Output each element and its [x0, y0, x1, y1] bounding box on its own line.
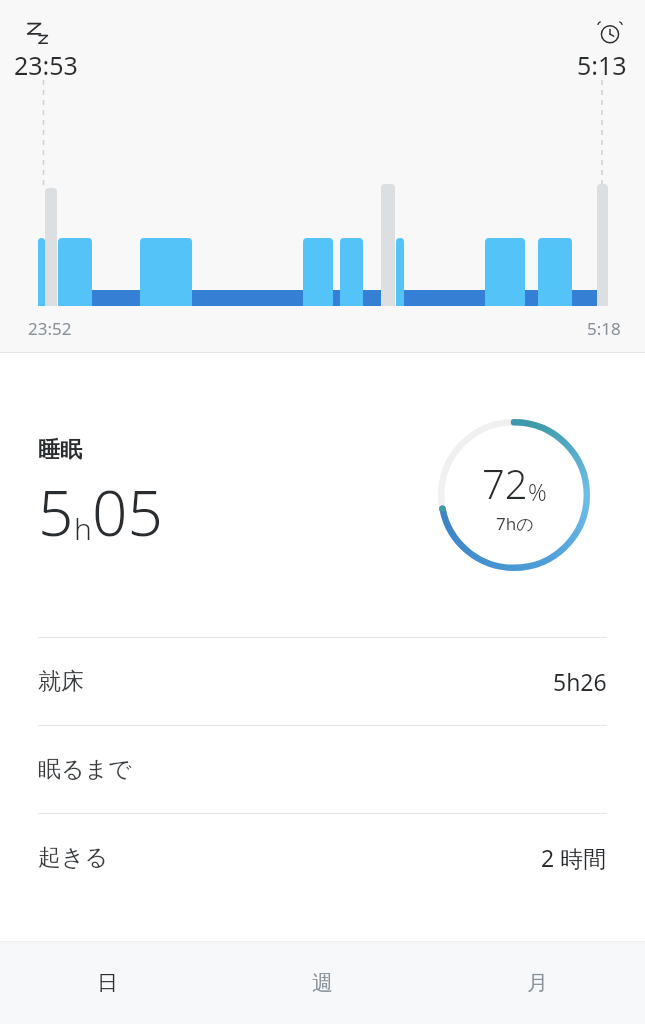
staticText: 眠るまで: [38, 755, 132, 784]
button[interactable]: 眠るまで: [0, 726, 645, 813]
staticText: 5:13: [577, 48, 627, 82]
staticText: 日: [97, 970, 118, 996]
other: Alarm: [597, 18, 623, 46]
button[interactable]: 起きる: [0, 814, 645, 901]
staticText: 2 時間: [541, 842, 607, 873]
staticText: 月: [527, 970, 548, 996]
staticText: 5:18: [587, 317, 621, 340]
staticText: 週: [312, 970, 333, 996]
button[interactable]: 就床: [0, 638, 645, 725]
button[interactable]: 日: [0, 942, 215, 1024]
staticText: 05: [92, 470, 163, 554]
button[interactable]: 月: [430, 942, 645, 1024]
staticText: %: [528, 476, 547, 507]
other: Sleep: [28, 22, 48, 48]
staticText: 7hの: [496, 512, 534, 535]
staticText: 睡眠: [38, 436, 82, 464]
button[interactable]: 週: [215, 942, 430, 1024]
staticText: 72: [482, 456, 528, 510]
staticText: 就床: [38, 667, 84, 696]
staticText: 23:53: [14, 48, 78, 82]
button[interactable]: 72: [438, 419, 590, 571]
staticText: 起きる: [38, 843, 109, 872]
staticText: h: [74, 508, 92, 549]
staticText: 23:52: [28, 317, 72, 340]
staticText: 5: [38, 470, 74, 554]
staticText: 5h26: [553, 666, 607, 697]
